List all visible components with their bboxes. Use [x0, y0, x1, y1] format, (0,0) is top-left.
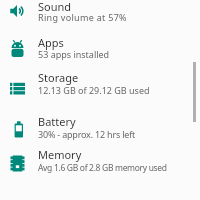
staticText: Ring volume at 57% [38, 11, 127, 23]
staticText: Battery [38, 114, 76, 129]
staticText: 12.13 GB of 29.12 GB used [38, 84, 150, 96]
staticText: 30% - approx. 12 hrs left [38, 128, 136, 140]
button[interactable]: Battery [0, 112, 200, 150]
staticText: Storage [38, 70, 79, 85]
staticText: Avg 1.6 GB of 2.8 GB memory used [38, 162, 167, 174]
button[interactable]: Memory [0, 150, 200, 187]
staticText: Memory [38, 147, 82, 162]
button[interactable]: Sound [0, 0, 200, 33]
button[interactable]: Storage [0, 70, 200, 112]
staticText: Sound [38, 0, 72, 14]
staticText: 53 apps installed [38, 48, 110, 60]
button[interactable]: Apps [0, 33, 200, 70]
staticText: Apps [38, 35, 64, 50]
